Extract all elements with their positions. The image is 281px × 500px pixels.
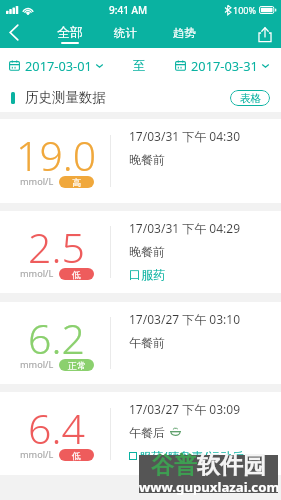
staticText: 17/03/31 下午 04:30 <box>129 128 241 144</box>
button[interactable]: 全部 <box>57 20 83 48</box>
staticText: 6.2 <box>28 310 85 366</box>
staticText: 午餐后 <box>129 425 165 440</box>
button[interactable]: 6.4 <box>0 392 281 475</box>
staticText: 2017-03-01 <box>25 57 92 74</box>
staticText: 6.4 <box>28 400 85 456</box>
staticText: 软件园 <box>197 451 266 480</box>
staticText: mmol/L <box>20 175 54 188</box>
button[interactable]: 2.5 <box>0 211 281 293</box>
staticText: 2017-03-31 <box>191 57 258 74</box>
staticText: 9:41 AM <box>109 3 148 17</box>
staticText: 2.5 <box>28 219 85 275</box>
staticText: 100% <box>233 4 256 16</box>
staticText: 高 <box>72 177 81 188</box>
staticText: 17/03/27 下午 03:10 <box>129 311 241 327</box>
staticText: 谷普 <box>151 451 197 480</box>
staticText: 统计 <box>114 26 137 40</box>
staticText: 口服药 <box>129 267 165 282</box>
staticText: 17/03/27 下午 03:09 <box>129 401 241 417</box>
staticText: 趋势 <box>173 26 196 40</box>
button[interactable]: 2017-03-31 <box>175 57 269 74</box>
staticText: www.gupuxlazai.com <box>139 478 278 496</box>
staticText: 历史测量数据 <box>25 89 106 106</box>
button[interactable]: 分享 <box>249 20 281 48</box>
staticText: mmol/L <box>20 448 54 461</box>
staticText: mmol/L <box>20 267 54 280</box>
staticText: 晚餐前 <box>129 152 165 167</box>
staticText: 正常 <box>68 360 86 371</box>
staticText: 表格 <box>240 92 261 105</box>
staticText: 17/03/31 下午 04:29 <box>129 220 241 236</box>
button[interactable]: 2017-03-01 <box>9 57 103 74</box>
button[interactable]: 返回 <box>0 20 28 48</box>
button[interactable]: 统计 <box>112 20 138 48</box>
button[interactable]: 6.2 <box>0 302 281 384</box>
button[interactable]: 表格 <box>230 90 270 106</box>
staticText: mmol/L <box>20 358 54 371</box>
staticText: 午餐前 <box>129 335 165 350</box>
staticText: 晚餐前 <box>129 244 165 259</box>
staticText: 服药/胰岛素/运动后 <box>139 448 244 464</box>
staticText: 低 <box>72 269 81 280</box>
button[interactable]: 19.0 <box>0 119 281 203</box>
staticText: 低 <box>72 450 81 461</box>
staticText: 19.0 <box>16 127 97 183</box>
staticText: 至 <box>133 58 146 74</box>
button[interactable]: 趋势 <box>171 20 197 48</box>
staticText: 全部 <box>57 24 83 40</box>
